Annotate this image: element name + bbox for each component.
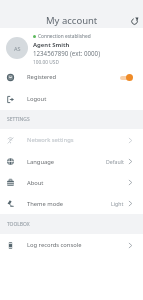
button[interactable]: Logout	[0, 88, 143, 110]
button[interactable]: Log records console	[0, 234, 143, 256]
staticText: Logout	[27, 95, 47, 103]
button[interactable]: About	[0, 172, 143, 193]
button[interactable]: Language	[0, 151, 143, 172]
staticText: Registered	[27, 73, 57, 81]
staticText: SETTINGS	[7, 116, 30, 123]
staticText: 1234567890 (ext: 0000)	[33, 49, 101, 57]
button[interactable]: Refresh	[126, 13, 143, 30]
staticText: Network settings	[27, 136, 74, 144]
staticText: Connection established	[38, 33, 91, 40]
button[interactable]	[120, 73, 133, 82]
staticText: Log records console	[27, 241, 82, 249]
staticText: About	[27, 179, 44, 187]
staticText: Theme mode	[27, 200, 64, 208]
staticText: AS	[14, 45, 21, 52]
staticText: Agent Smith	[33, 41, 70, 49]
staticText: Language	[27, 158, 55, 166]
staticText: Light	[111, 200, 124, 207]
staticText: My account	[46, 14, 98, 27]
button[interactable]: Theme mode	[0, 193, 143, 214]
staticText: 100.00 USD	[33, 59, 59, 66]
button[interactable]: Network settings	[0, 129, 143, 151]
staticText: Default	[106, 158, 124, 165]
button[interactable]: Registered	[0, 66, 143, 88]
staticText: TOOLBOX	[7, 221, 30, 228]
